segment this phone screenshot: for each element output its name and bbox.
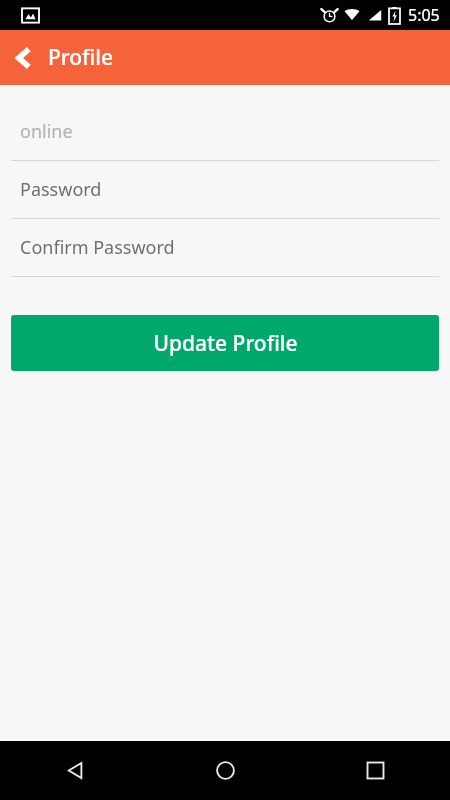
button[interactable]: Confirm Password	[11, 219, 439, 277]
button[interactable]: Back	[0, 741, 150, 800]
button[interactable]: online	[11, 103, 439, 161]
button[interactable]: Recent apps	[300, 741, 450, 800]
staticText: online	[20, 119, 73, 144]
button[interactable]: Back	[0, 30, 48, 85]
staticText: 5:05	[408, 4, 440, 26]
staticText: Update Profile	[153, 329, 298, 358]
button[interactable]: Home	[150, 741, 300, 800]
staticText: Password	[20, 177, 102, 202]
staticText: Confirm Password	[20, 235, 175, 260]
button[interactable]: Password	[11, 161, 439, 219]
button[interactable]: Update Profile	[11, 315, 439, 371]
staticText: Profile	[48, 43, 113, 72]
